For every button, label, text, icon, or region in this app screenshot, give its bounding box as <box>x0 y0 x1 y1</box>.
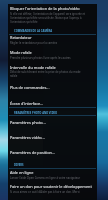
button[interactable] <box>8 81 97 94</box>
staticText: Si vous aimez ce outil d'Aider pas à fai… <box>10 190 80 194</box>
staticText: Mode rafale <box>10 50 32 55</box>
staticText: Plus de commandes... <box>10 85 50 90</box>
button[interactable] <box>8 62 97 80</box>
staticText: Lancer l'aide Open Camera en ligne à vot… <box>10 176 81 180</box>
staticText: Paramètres de position... <box>10 150 56 155</box>
staticText: rafale <box>10 74 18 78</box>
staticText: Si elle est définie, l'orientation de l'… <box>10 12 86 16</box>
staticText: Faire un don pour soutenir le développem… <box>10 184 92 189</box>
staticText: PARAMÈTRES PHOTO AND VIDEO <box>14 111 58 115</box>
button[interactable] <box>8 145 97 158</box>
staticText: Prendre plusieurs photos l'une après les… <box>10 56 71 60</box>
staticText: DIVERS <box>14 163 24 167</box>
staticText: Bloquer l'orientation de la photo/vidéo <box>10 6 80 11</box>
button[interactable] <box>8 4 97 24</box>
staticText: l'orientation spécifiée <box>10 20 38 24</box>
button[interactable] <box>8 35 97 47</box>
staticText: l'orientation spécifiée sera utilisée. N… <box>10 16 82 20</box>
button[interactable] <box>8 169 97 182</box>
staticText: Régler le retardateur pour la caméra <box>10 41 58 45</box>
staticText: Paramètres vidéo... <box>10 135 45 140</box>
staticText: Délai de sub écheant entre la prise de p… <box>10 70 81 74</box>
staticText: Écran d'interface... <box>10 101 44 106</box>
staticText: Aide en ligne <box>10 170 34 175</box>
staticText: Intervalle du mode rafale <box>10 65 56 70</box>
button[interactable] <box>8 130 97 143</box>
staticText: Retardateur <box>10 35 32 40</box>
button[interactable] <box>8 182 97 198</box>
button[interactable] <box>8 97 97 110</box>
staticText: Paramètres photo... <box>10 120 46 125</box>
button[interactable] <box>8 47 97 60</box>
staticText: COMMANDES DE LA CAMÉRA <box>14 29 53 33</box>
button[interactable] <box>8 116 97 129</box>
